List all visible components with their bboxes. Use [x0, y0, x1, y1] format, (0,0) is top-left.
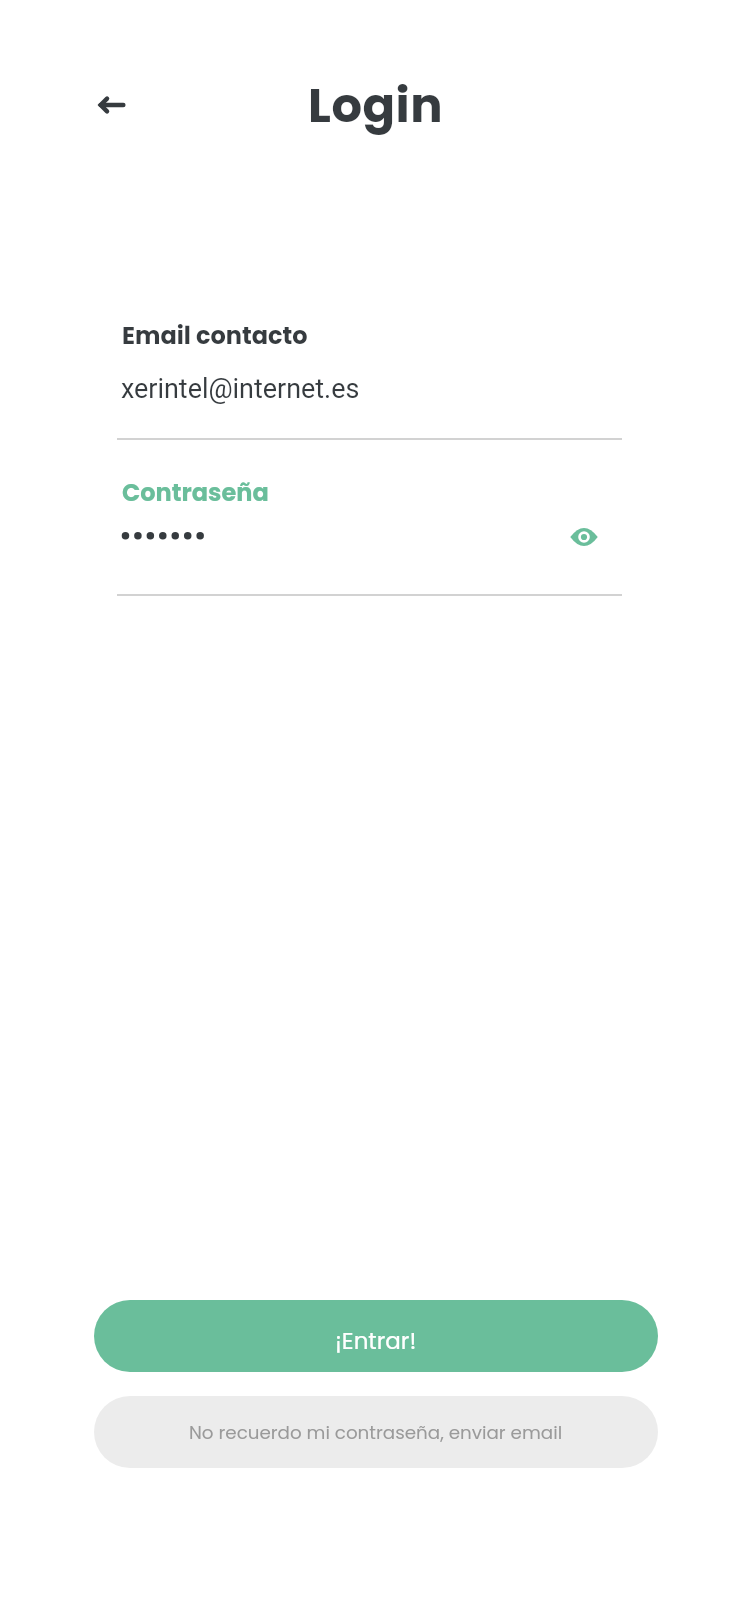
staticText: No recuerdo mi contraseña, enviar email	[189, 1420, 563, 1446]
staticText: Contraseña	[122, 476, 269, 510]
button[interactable]: ¡Entrar!	[94, 1300, 658, 1372]
staticText: ¡Entrar!	[335, 1325, 417, 1357]
button[interactable]: Back	[88, 81, 136, 129]
button[interactable]: Show password	[560, 513, 608, 561]
staticText: Login	[308, 72, 444, 139]
staticText: Email contacto	[122, 319, 308, 353]
staticText: xerintel@internet.es	[121, 373, 360, 405]
button[interactable]: No recuerdo mi contraseña, enviar email	[94, 1396, 658, 1468]
